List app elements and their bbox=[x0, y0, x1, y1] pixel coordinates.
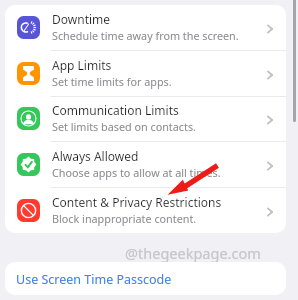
staticText: App Limits bbox=[52, 57, 112, 73]
staticText: Use Screen Time Passcode bbox=[16, 271, 172, 288]
staticText: Set time limits for apps. bbox=[52, 74, 172, 89]
staticText: Always Allowed bbox=[52, 148, 139, 164]
staticText: Content & Privacy Restrictions bbox=[52, 194, 222, 210]
staticText: Block inappropriate content. bbox=[52, 211, 197, 226]
staticText: Schedule time away from the screen. bbox=[52, 28, 239, 43]
button[interactable]: App Limits bbox=[5, 51, 286, 97]
button[interactable]: Use Screen Time Passcode bbox=[5, 262, 286, 295]
staticText: Choose apps to allow at all times. bbox=[52, 165, 221, 180]
staticText: Downtime bbox=[52, 11, 111, 27]
staticText: @thegeekpage.com bbox=[125, 243, 261, 263]
staticText: Communication Limits bbox=[52, 102, 179, 118]
button[interactable]: Always Allowed bbox=[5, 142, 286, 188]
staticText: Set limits based on contacts. bbox=[52, 119, 196, 134]
button[interactable]: Communication Limits bbox=[5, 96, 286, 142]
button[interactable]: Downtime bbox=[5, 5, 286, 51]
button[interactable]: Content & Privacy Restrictions bbox=[5, 188, 286, 233]
